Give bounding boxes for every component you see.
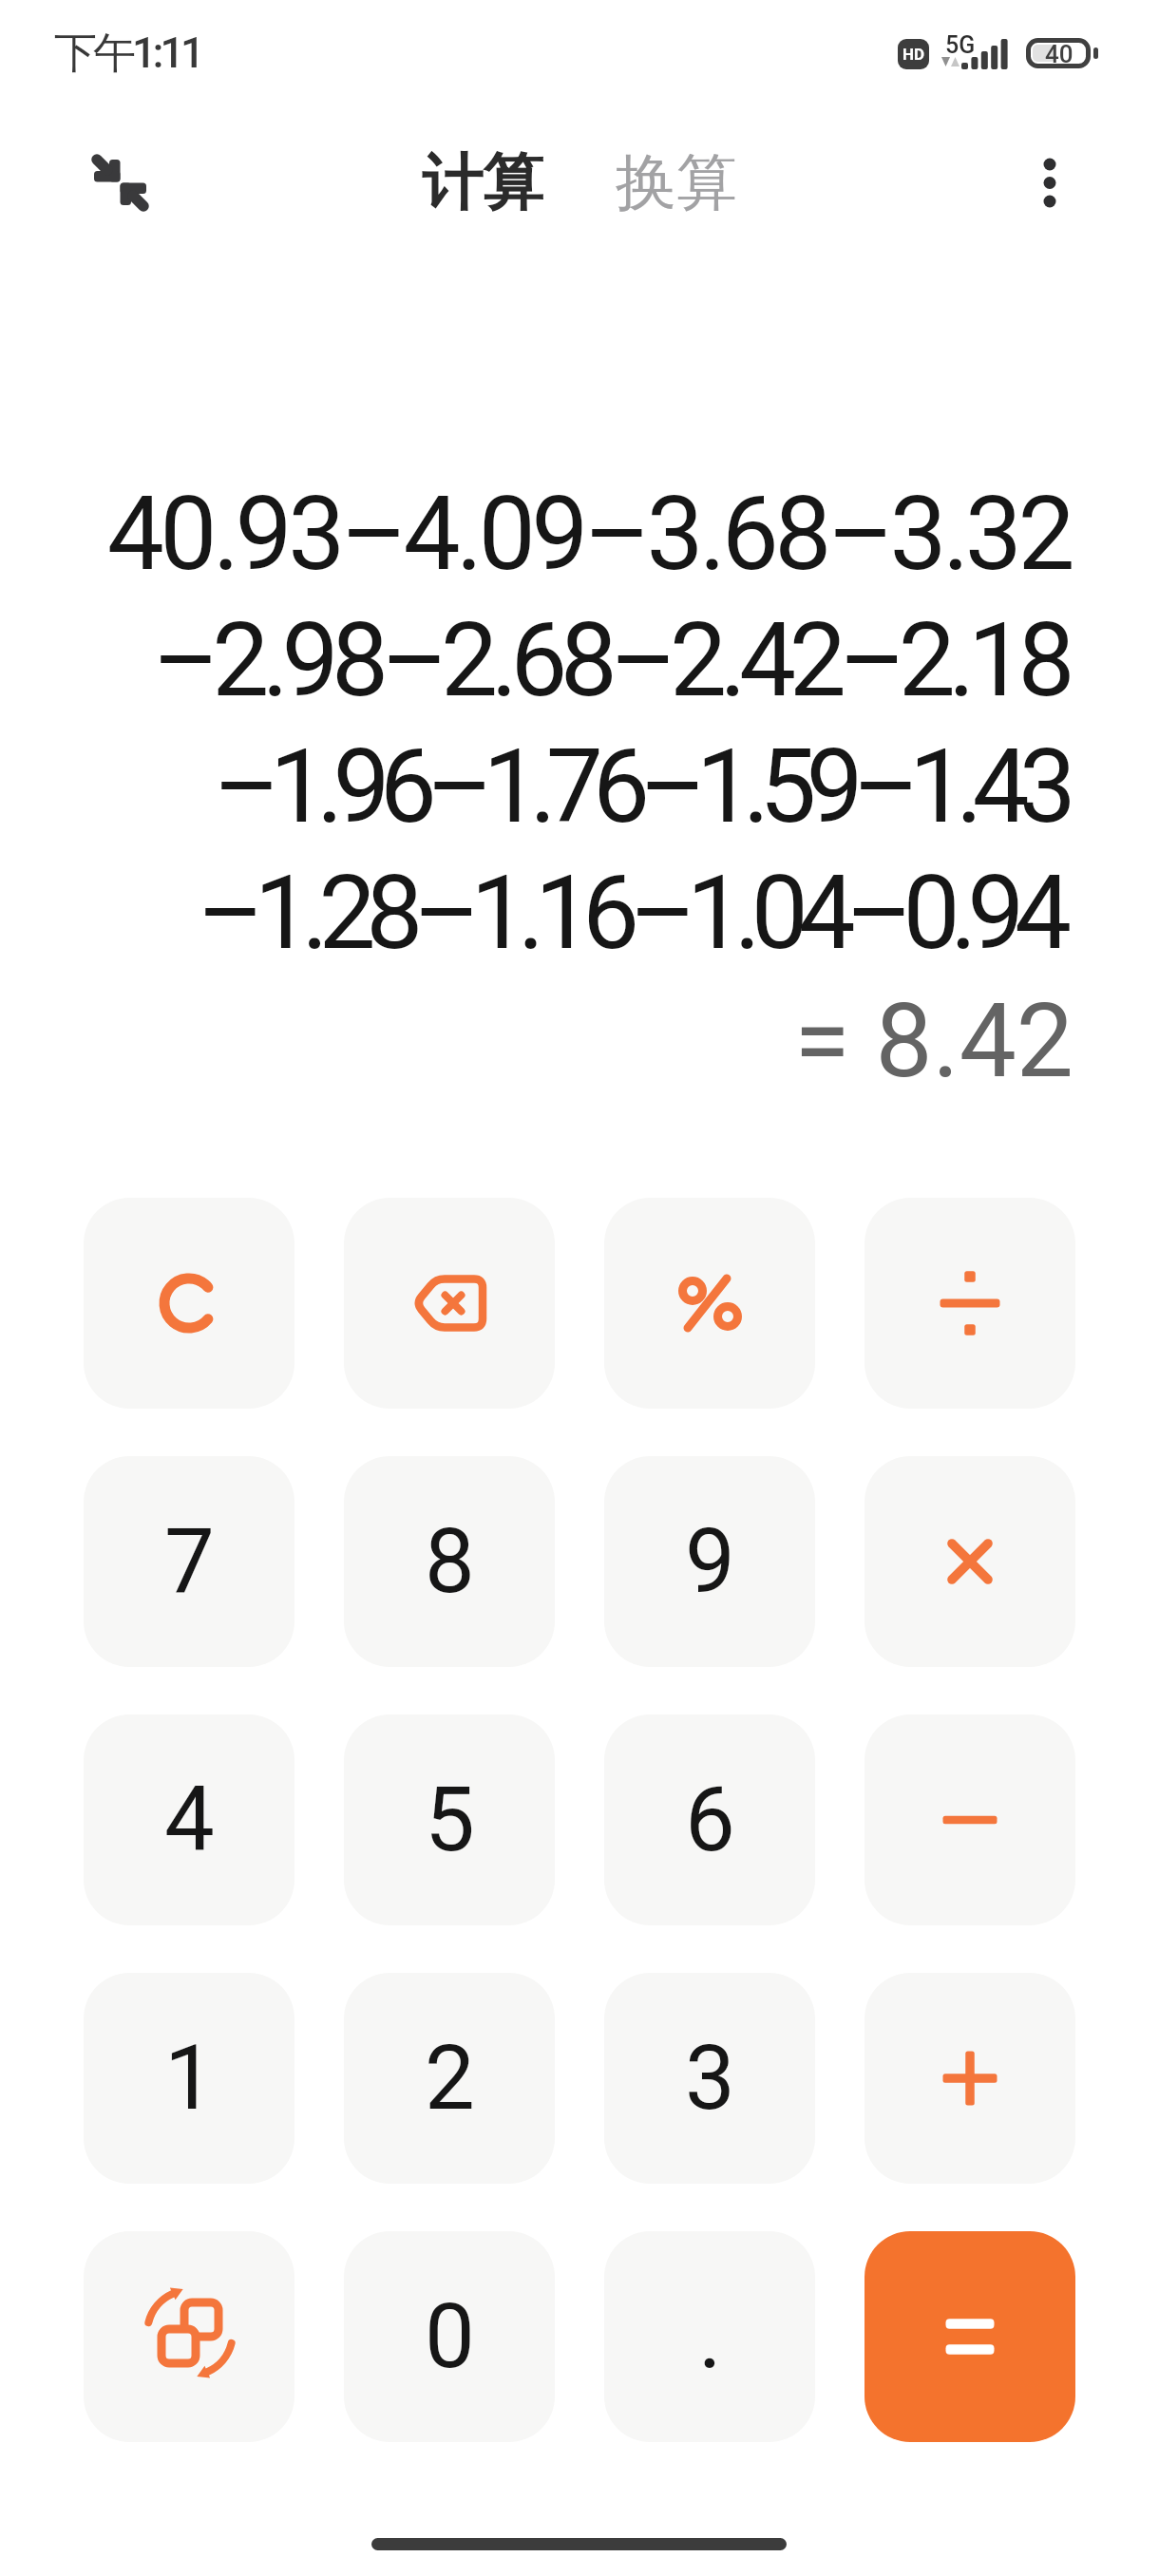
button[interactable]: 4 xyxy=(84,1714,294,1925)
staticText: 3 xyxy=(685,2026,735,2131)
staticText: 4 xyxy=(164,1768,215,1872)
staticText: 2 xyxy=(425,2026,475,2131)
staticText: HD xyxy=(902,45,925,64)
button[interactable]: 8 xyxy=(344,1456,555,1667)
button[interactable] xyxy=(604,1198,815,1409)
staticText: 6 xyxy=(685,1768,735,1872)
staticText: 5G xyxy=(945,31,976,59)
button[interactable] xyxy=(344,1198,555,1409)
staticText: 计算 xyxy=(422,144,543,221)
staticText: 40 xyxy=(1045,40,1073,68)
button[interactable]: 计算 xyxy=(422,144,543,221)
staticText: 5 xyxy=(425,1768,475,1872)
button[interactable] xyxy=(864,1714,1075,1925)
button[interactable]: 9 xyxy=(604,1456,815,1667)
button[interactable]: 换算 xyxy=(616,144,737,221)
button[interactable] xyxy=(74,137,165,228)
button[interactable]: 7 xyxy=(84,1456,294,1667)
staticText: 8 xyxy=(425,1509,475,1614)
button[interactable]: 5 xyxy=(344,1714,555,1925)
button[interactable] xyxy=(864,2231,1075,2442)
button[interactable] xyxy=(864,1456,1075,1667)
button[interactable] xyxy=(1010,142,1090,222)
staticText: 下午1:11 xyxy=(54,27,201,81)
staticText: –1.28–1.16–1.04–0.94 xyxy=(0,854,1062,973)
staticText: –2.98–2.68–2.42–2.18 xyxy=(0,601,1068,720)
staticText: . xyxy=(698,2284,722,2389)
staticText: 0 xyxy=(425,2284,475,2389)
button[interactable] xyxy=(864,1973,1075,2184)
button[interactable]: 3 xyxy=(604,1973,815,2184)
staticText: 1 xyxy=(164,2026,215,2131)
button[interactable]: 1 xyxy=(84,1973,294,2184)
staticText: 7 xyxy=(164,1509,215,1614)
button[interactable]: 0 xyxy=(344,2231,555,2442)
staticText: 换算 xyxy=(616,144,737,221)
button[interactable]: 2 xyxy=(344,1973,555,2184)
staticText: = 8.42 xyxy=(0,982,1073,1101)
button[interactable]: . xyxy=(604,2231,815,2442)
staticText: –1.96–1.76–1.59–1.43 xyxy=(0,728,1066,846)
button[interactable]: 6 xyxy=(604,1714,815,1925)
staticText: 40.93–4.09–3.68–3.32 xyxy=(0,475,1071,594)
button[interactable] xyxy=(84,1198,294,1409)
button[interactable] xyxy=(84,2231,294,2442)
button[interactable] xyxy=(864,1198,1075,1409)
staticText: 9 xyxy=(685,1509,735,1614)
